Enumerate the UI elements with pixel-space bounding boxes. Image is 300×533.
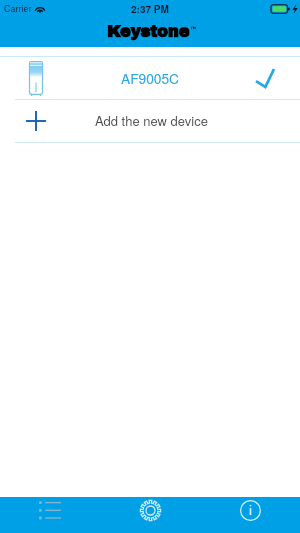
button[interactable]: Add the new device (0, 100, 300, 142)
staticText: Keystone (107, 23, 190, 40)
button[interactable]: Device list (0, 497, 100, 533)
staticText: Add the new device (95, 111, 208, 130)
button[interactable]: Information (200, 497, 300, 533)
button[interactable]: Settings (100, 497, 200, 533)
staticText: ™ (190, 24, 197, 33)
button[interactable]: AF9005C (0, 57, 300, 99)
staticText: Carrier (4, 2, 32, 15)
staticText: AF9005C (121, 68, 179, 88)
staticText: 2:37 PM (131, 2, 169, 16)
